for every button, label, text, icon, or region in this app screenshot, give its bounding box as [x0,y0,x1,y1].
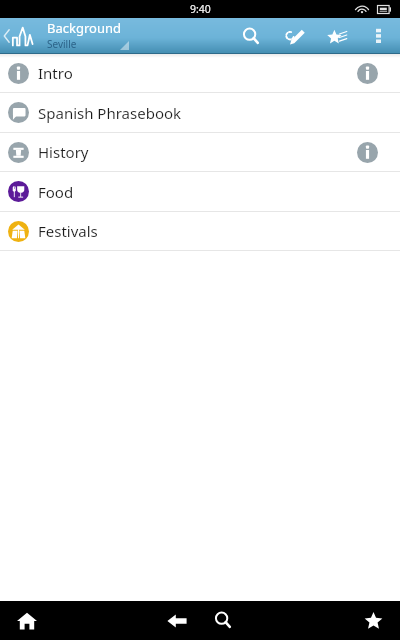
button[interactable]: Search [200,601,246,640]
button[interactable]: Home [0,601,54,640]
button[interactable]: Back [154,601,200,640]
staticText: Background [47,19,121,37]
staticText: Spanish Phrasebook [38,103,182,123]
staticText: Festivals [38,221,98,241]
button[interactable]: More options [365,18,391,54]
staticText: Food [38,182,74,202]
staticText: Seville [47,37,77,51]
button[interactable]: Info [345,133,389,171]
button[interactable]: Info [345,54,389,92]
button[interactable]: Intro [0,54,400,92]
button[interactable]: Favorites [314,18,358,54]
button[interactable]: Food [0,172,400,211]
button[interactable]: Favorites [349,601,397,640]
button[interactable]: Edit [273,18,317,54]
button[interactable]: Navigate up [0,18,38,54]
button[interactable]: History [0,133,400,171]
staticText: 9:40 [190,2,211,16]
button[interactable]: Spanish Phrasebook [0,93,400,132]
staticText: Intro [38,63,73,83]
button[interactable]: Search [229,18,273,54]
button[interactable]: Festivals [0,212,400,250]
staticText: History [38,142,89,162]
